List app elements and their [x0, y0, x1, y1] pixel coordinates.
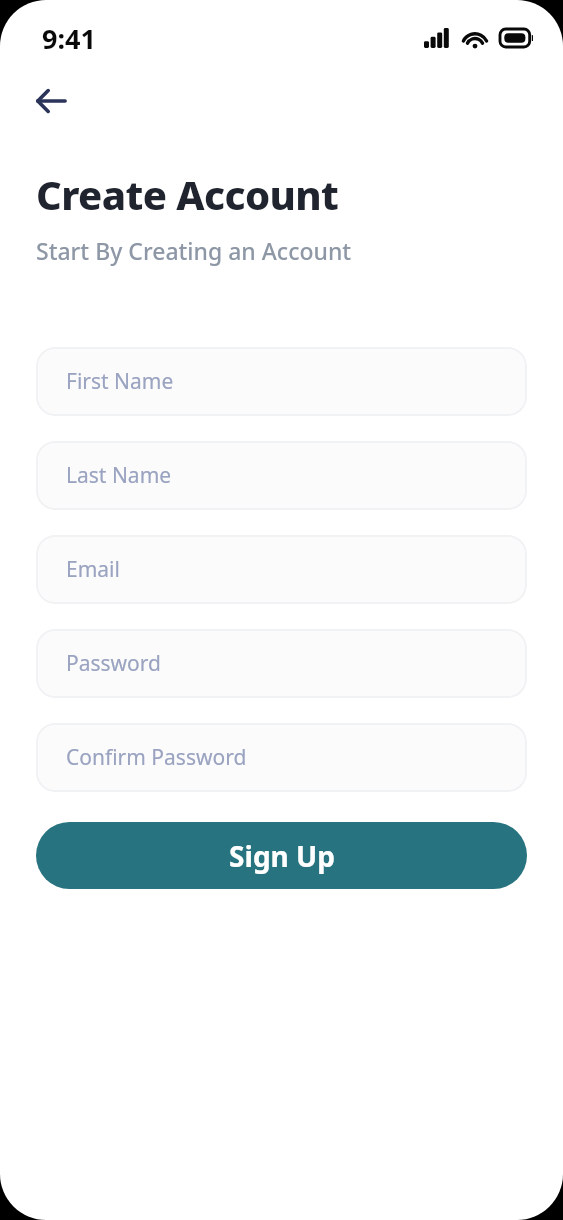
staticText: Create Account [36, 167, 339, 221]
button[interactable]: Confirm Password [36, 723, 527, 792]
button[interactable]: Password [36, 629, 527, 698]
staticText: Last Name [66, 461, 172, 490]
button[interactable]: First Name [36, 347, 527, 416]
staticText: First Name [66, 367, 174, 396]
staticText: Email [66, 555, 120, 584]
staticText: Confirm Password [66, 743, 247, 772]
staticText: Password [66, 649, 161, 678]
button[interactable]: Back [22, 72, 80, 130]
staticText: Sign Up [229, 837, 335, 875]
staticText: 9:41 [42, 20, 96, 57]
button[interactable]: Last Name [36, 441, 527, 510]
staticText: Start By Creating an Account [36, 235, 352, 266]
button[interactable]: Sign Up [36, 822, 527, 889]
button[interactable]: Email [36, 535, 527, 604]
